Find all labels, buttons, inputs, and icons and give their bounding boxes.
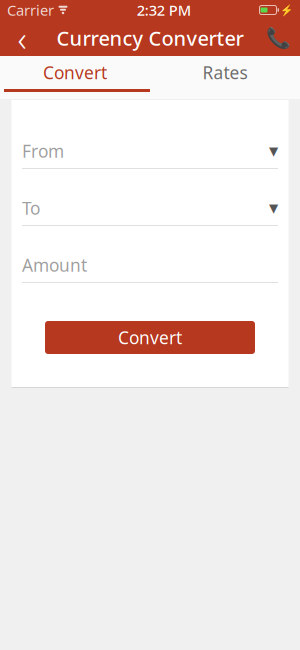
button[interactable]: Call [256, 20, 300, 56]
staticText: Convert [43, 61, 107, 84]
staticText: ▼ [269, 201, 278, 215]
staticText: Amount [22, 253, 87, 276]
staticText: 📞 [265, 27, 290, 49]
button[interactable]: Convert [45, 321, 255, 354]
staticText: ▼ [269, 144, 278, 158]
staticText: Rates [202, 61, 247, 84]
staticText: Currency Converter [56, 25, 243, 51]
staticText: From [22, 139, 64, 162]
button[interactable]: Back [0, 20, 44, 56]
staticText: Convert [118, 326, 182, 349]
staticText: ‹ [17, 15, 26, 61]
staticText: 2:32 PM [137, 0, 191, 20]
staticText: Carrier [7, 0, 54, 20]
button[interactable]: Convert [0, 56, 150, 89]
button[interactable]: Rates [150, 56, 300, 89]
staticText: ⚡ [280, 4, 293, 16]
staticText: To [22, 196, 40, 219]
